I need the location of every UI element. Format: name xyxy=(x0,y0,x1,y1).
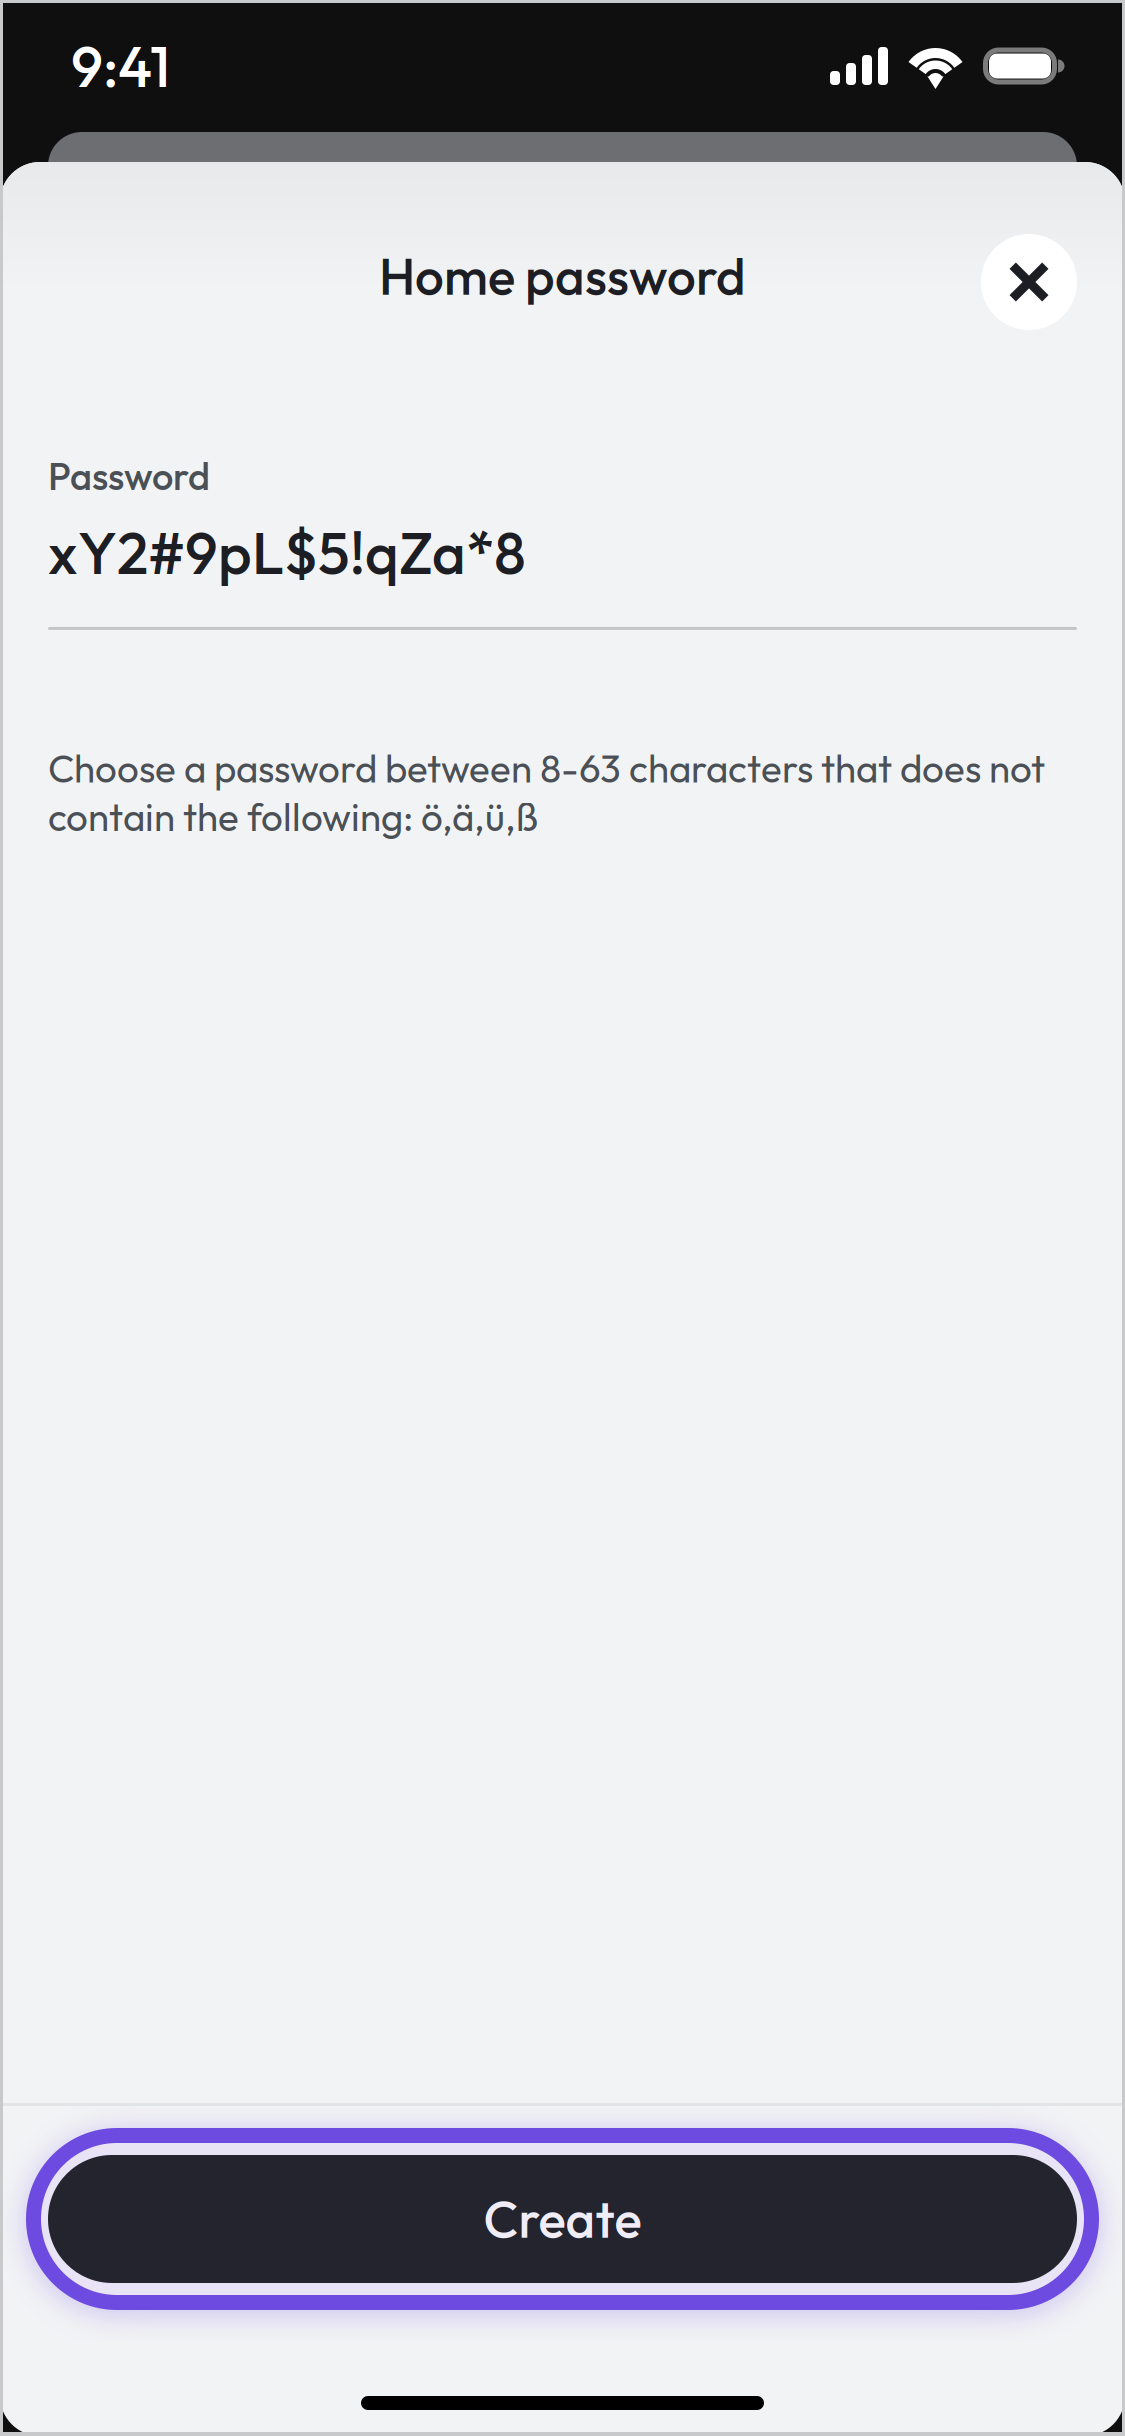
button[interactable]: Close xyxy=(981,234,1077,330)
button[interactable]: Create xyxy=(0,2128,1125,2310)
staticText: Create xyxy=(483,2187,641,2251)
staticText: Choose a password between 8-63 character… xyxy=(48,744,1045,841)
staticText: Home password xyxy=(379,244,746,308)
staticText: xY2#9pL$5!qZa*8 xyxy=(48,516,526,589)
staticText: 9:41 xyxy=(71,30,170,102)
staticText: Password xyxy=(48,452,210,500)
